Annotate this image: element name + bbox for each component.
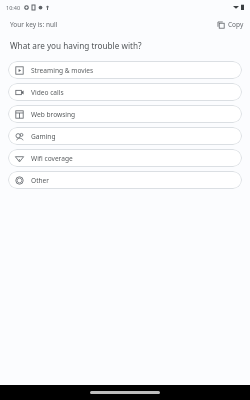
button[interactable]: Video calls xyxy=(8,83,242,101)
staticText: 10:40 xyxy=(6,4,21,11)
button[interactable]: Copy xyxy=(211,17,250,32)
button[interactable]: Other xyxy=(8,171,242,189)
staticText: Copy xyxy=(228,20,244,29)
staticText: Video calls xyxy=(31,88,64,97)
button[interactable]: Wifi coverage xyxy=(8,149,242,167)
staticText: Streaming & movies xyxy=(31,66,94,75)
staticText: Other xyxy=(31,176,50,185)
button[interactable]: Web browsing xyxy=(8,105,242,123)
staticText: What are you having trouble with? xyxy=(10,40,142,51)
button[interactable]: Gaming xyxy=(8,127,242,145)
staticText: Wifi coverage xyxy=(31,154,73,163)
staticText: Gaming xyxy=(31,132,56,141)
staticText: Web browsing xyxy=(31,110,76,119)
button[interactable]: Streaming & movies xyxy=(8,61,242,79)
staticText: Your key is: null xyxy=(10,20,58,29)
